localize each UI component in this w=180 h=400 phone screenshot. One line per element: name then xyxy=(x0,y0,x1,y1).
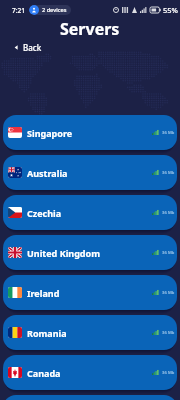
staticText: United Kingdom xyxy=(27,247,100,259)
staticText: 36 Mb xyxy=(162,250,175,256)
button[interactable]: Canada xyxy=(3,355,177,390)
staticText: 36 Mb xyxy=(162,170,175,176)
staticText: Czechia xyxy=(27,207,62,219)
staticText: 7:21 xyxy=(12,6,25,15)
button[interactable]: Australia xyxy=(3,155,177,190)
staticText: 36 Mb xyxy=(162,290,175,296)
button[interactable]: Romania xyxy=(3,315,177,350)
button[interactable]: Germany xyxy=(3,395,177,400)
staticText: Back xyxy=(23,42,42,53)
staticText: Canada xyxy=(27,367,61,379)
button[interactable]: Back xyxy=(12,39,44,56)
staticText: 55% xyxy=(163,5,178,15)
staticText: 36 Mb xyxy=(162,330,175,336)
button[interactable]: Czechia xyxy=(3,195,177,230)
staticText: Australia xyxy=(27,167,68,179)
staticText: 36 Mb xyxy=(162,130,175,136)
button[interactable]: Singapore xyxy=(3,115,177,150)
staticText: 2 devices xyxy=(42,6,67,14)
staticText: Ireland xyxy=(27,287,60,299)
staticText: Singapore xyxy=(27,127,73,139)
button[interactable]: Ireland xyxy=(3,275,177,310)
staticText: Romania xyxy=(27,327,67,339)
other: Back xyxy=(14,45,18,50)
staticText: 36 Mb xyxy=(162,370,175,376)
staticText: Servers xyxy=(60,18,120,36)
button[interactable]: United Kingdom xyxy=(3,235,177,270)
staticText: 36 Mb xyxy=(162,210,175,216)
